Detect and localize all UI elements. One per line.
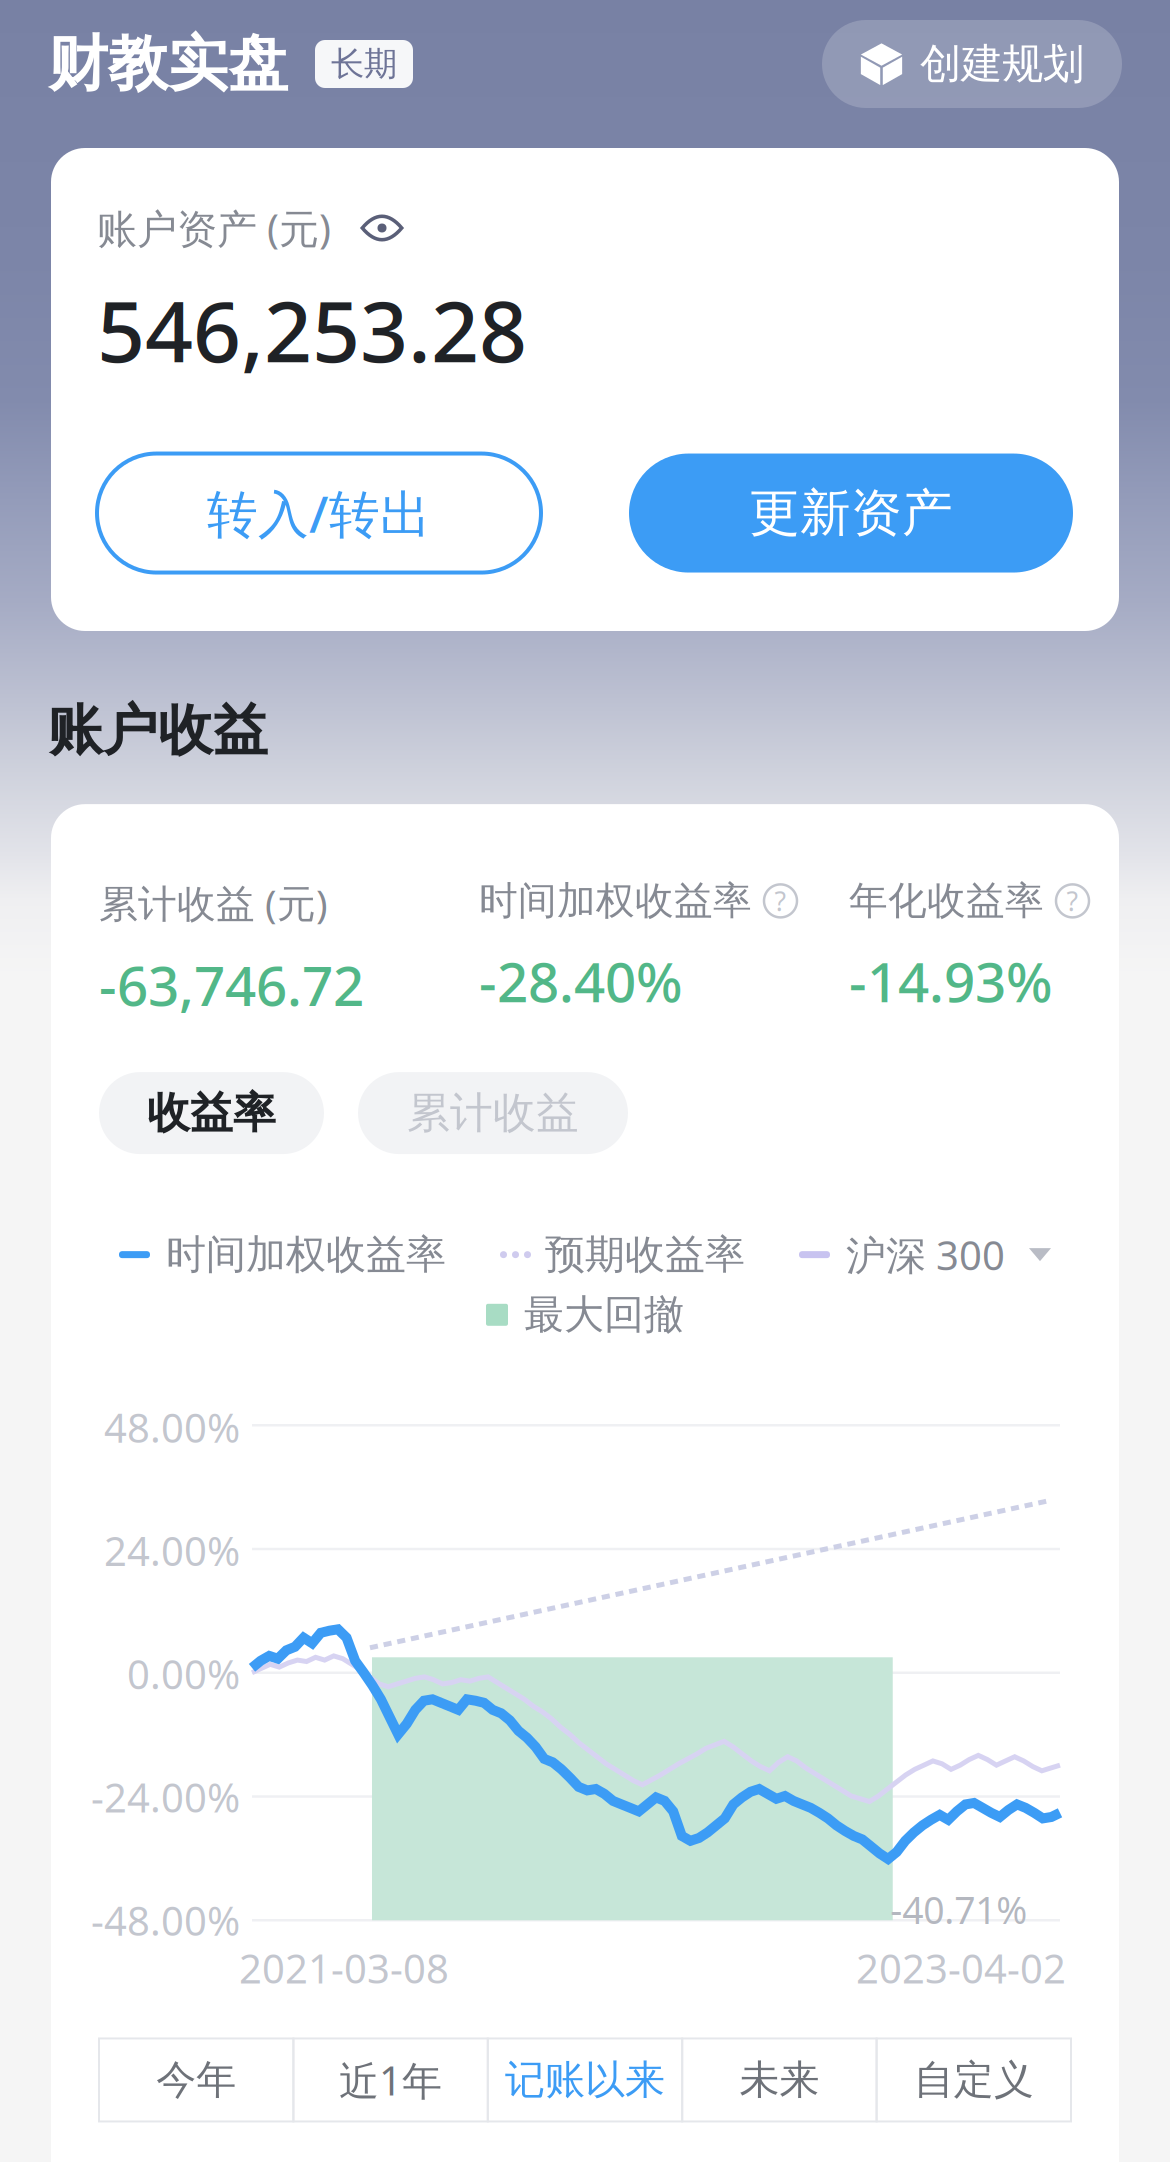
staticText: ? bbox=[1066, 883, 1078, 919]
staticText: 账户资产 (元) bbox=[97, 201, 331, 254]
button[interactable]: 未来 bbox=[682, 2038, 877, 2121]
staticText: 546,253.28 bbox=[97, 274, 527, 385]
staticText: 账户收益 bbox=[48, 697, 268, 764]
button[interactable]: 今年 bbox=[99, 2038, 293, 2121]
staticText: 0.00% bbox=[127, 1647, 240, 1700]
staticText: 收益率 bbox=[147, 1087, 276, 1139]
staticText: 更新资产 bbox=[749, 482, 953, 544]
staticText: ? bbox=[774, 883, 786, 919]
staticText: 时间加权收益率 bbox=[166, 1230, 446, 1279]
button[interactable]: 累计收益 bbox=[358, 1072, 628, 1154]
staticText: 近1年 bbox=[339, 2053, 442, 2106]
staticText: -24.00% bbox=[91, 1770, 240, 1824]
button[interactable]: 更新资产 bbox=[629, 453, 1073, 572]
staticText: 创建规划 bbox=[920, 39, 1084, 89]
staticText: -14.93% bbox=[849, 945, 1053, 1017]
staticText: 年化收益率 bbox=[849, 877, 1044, 925]
staticText: -40.71% bbox=[890, 1885, 1027, 1934]
staticText: 今年 bbox=[156, 2055, 236, 2104]
staticText: 记账以来 bbox=[505, 2055, 665, 2104]
button[interactable]: 创建规划 bbox=[822, 20, 1122, 108]
staticText: 24.00% bbox=[104, 1524, 240, 1577]
button[interactable]: 转入/转出 bbox=[97, 453, 541, 572]
button[interactable]: 记账以来 bbox=[488, 2038, 682, 2121]
button[interactable]: 自定义 bbox=[877, 2038, 1071, 2121]
staticText: 2021-03-08 bbox=[239, 1941, 449, 1994]
staticText: 累计收益 bbox=[407, 1087, 579, 1139]
button[interactable]: 收益率 bbox=[99, 1072, 324, 1154]
staticText: 自定义 bbox=[914, 2055, 1034, 2104]
staticText: 2023-04-02 bbox=[856, 1941, 1066, 1994]
staticText: 48.00% bbox=[104, 1401, 240, 1454]
staticText: 时间加权收益率 bbox=[479, 877, 752, 925]
staticText: -63,746.72 bbox=[99, 948, 364, 1021]
staticText: 财教实盘 bbox=[48, 27, 288, 101]
staticText: 最大回撤 bbox=[524, 1290, 684, 1339]
staticText: 预期收益率 bbox=[545, 1230, 745, 1279]
button[interactable]: 近1年 bbox=[293, 2038, 488, 2121]
staticText: -28.40% bbox=[479, 945, 683, 1017]
staticText: 沪深 300 bbox=[846, 1228, 1005, 1281]
staticText: 转入/转出 bbox=[207, 479, 431, 547]
staticText: -48.00% bbox=[91, 1894, 240, 1947]
staticText: 长期 bbox=[331, 43, 397, 84]
staticText: 累计收益 (元) bbox=[99, 877, 328, 928]
staticText: 未来 bbox=[739, 2055, 819, 2104]
